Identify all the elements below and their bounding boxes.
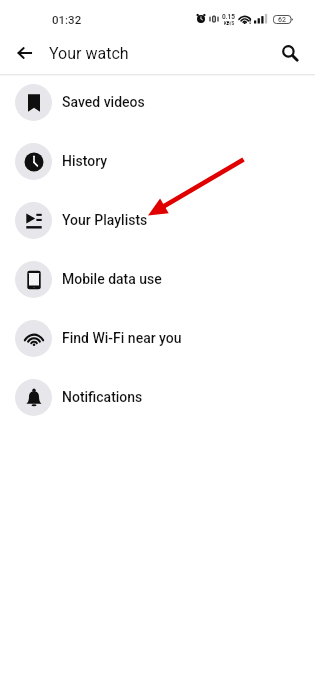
button[interactable]: Saved videos: [0, 73, 315, 132]
staticText: 0.15: [222, 13, 236, 21]
staticText: Find Wi-Fi near you: [62, 330, 182, 346]
staticText: Notifications: [62, 389, 143, 405]
staticText: Saved videos: [62, 94, 145, 110]
staticText: Your Playlists: [62, 212, 148, 228]
button[interactable]: Notifications: [0, 368, 315, 427]
button[interactable]: History: [0, 132, 315, 191]
button[interactable]: Search: [275, 38, 304, 67]
button[interactable]: Find Wi-Fi near you: [0, 309, 315, 368]
staticText: 62: [278, 16, 286, 24]
staticText: History: [62, 153, 108, 169]
staticText: Mobile data use: [62, 271, 162, 287]
button[interactable]: Back: [10, 38, 39, 67]
button[interactable]: Your Playlists: [0, 191, 315, 250]
staticText: KB/S: [224, 21, 235, 26]
staticText: 01:32: [52, 13, 82, 26]
staticText: Your watch: [49, 44, 129, 63]
button[interactable]: Mobile data use: [0, 250, 315, 309]
